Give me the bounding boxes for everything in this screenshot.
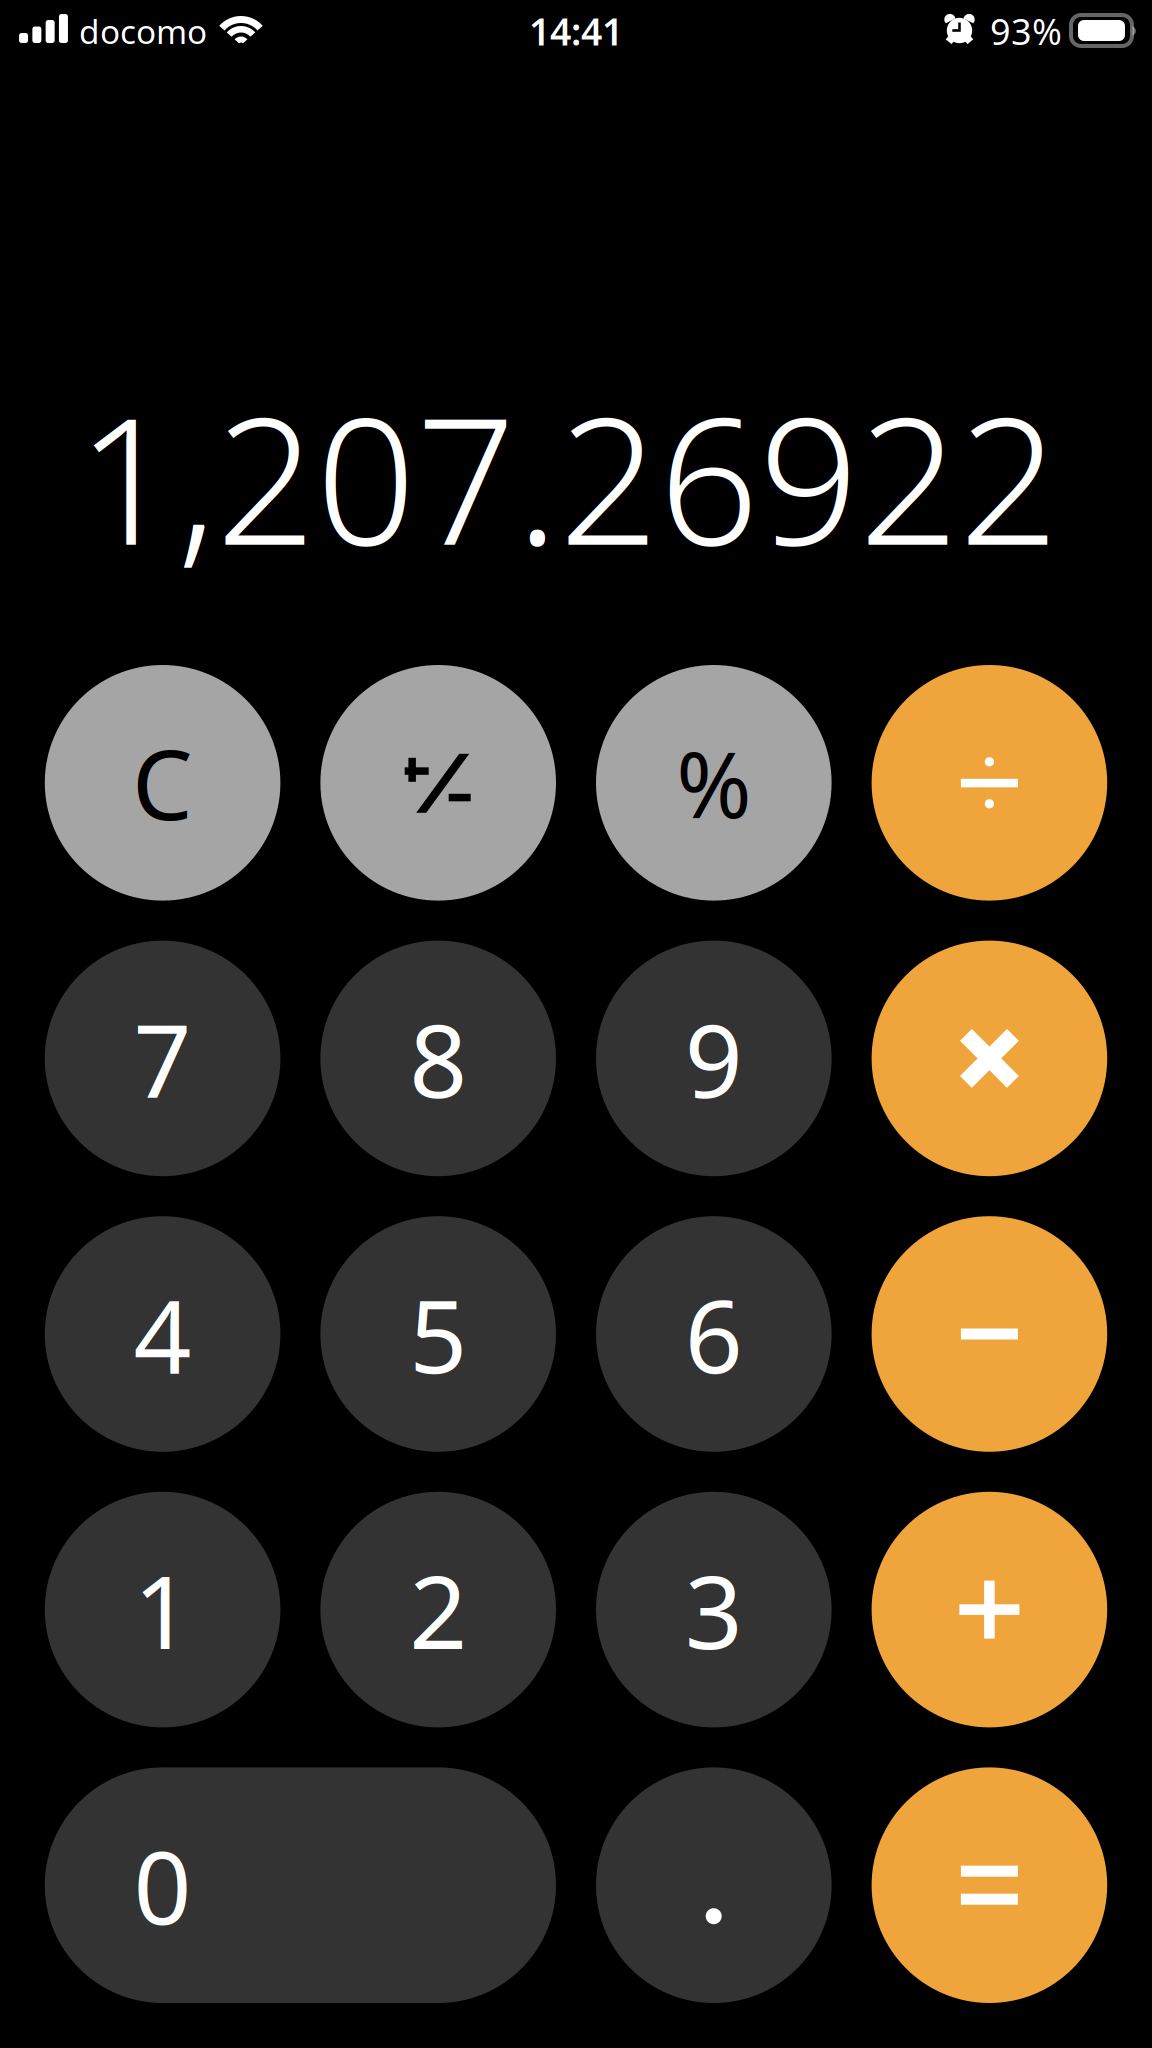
button[interactable]: 0 xyxy=(45,1767,556,2003)
button[interactable]: % xyxy=(596,665,832,901)
staticText: % xyxy=(676,723,751,843)
button[interactable]: Equals xyxy=(872,1767,1107,2003)
staticText: docomo xyxy=(79,9,207,53)
button[interactable]: 8 xyxy=(320,941,556,1176)
button[interactable]: 5 xyxy=(320,1216,556,1452)
staticText: 1 xyxy=(134,1542,192,1677)
button[interactable]: Minus xyxy=(872,1216,1107,1452)
staticText: 93% xyxy=(990,7,1062,55)
button[interactable]: 1 xyxy=(45,1492,280,1727)
staticText: 2 xyxy=(409,1542,467,1677)
button[interactable]: Plus minus xyxy=(320,665,556,901)
button[interactable]: 3 xyxy=(596,1492,832,1727)
button[interactable]: Multiply xyxy=(872,941,1107,1176)
staticText: 0 xyxy=(134,1818,192,1952)
staticText: 4 xyxy=(134,1267,192,1401)
staticText: C xyxy=(132,719,193,847)
staticText: 7 xyxy=(134,991,192,1126)
button[interactable]: C xyxy=(45,665,280,901)
staticText: 6 xyxy=(685,1267,743,1401)
staticText: 14:41 xyxy=(529,6,623,56)
staticText: 1,207.26922 xyxy=(77,361,1059,593)
button[interactable]: 6 xyxy=(596,1216,832,1452)
staticText: 3 xyxy=(685,1542,743,1677)
button[interactable]: Plus xyxy=(872,1492,1107,1727)
button[interactable]: 7 xyxy=(45,941,280,1176)
staticText: 5 xyxy=(409,1267,467,1401)
button[interactable]: Divide xyxy=(872,665,1107,901)
staticText: 9 xyxy=(685,991,743,1126)
button[interactable]: 4 xyxy=(45,1216,280,1452)
staticText: 8 xyxy=(409,991,467,1126)
button[interactable]: 2 xyxy=(320,1492,556,1727)
button[interactable]: 9 xyxy=(596,941,832,1176)
button[interactable]: Decimal point xyxy=(596,1767,832,2003)
